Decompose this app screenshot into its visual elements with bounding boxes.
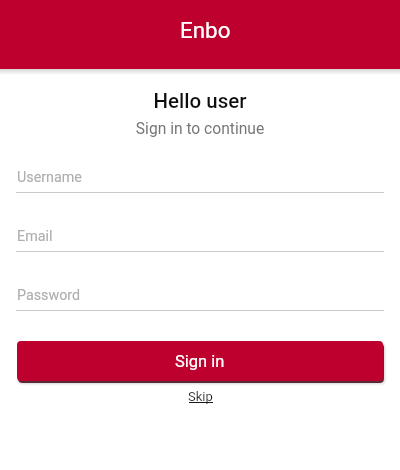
staticText: Sign in to continue — [0, 120, 400, 138]
staticText: Hello user — [0, 89, 400, 113]
button[interactable]: Skip — [182, 384, 219, 409]
staticText: Enbo — [180, 17, 231, 43]
button[interactable]: Username — [16, 160, 384, 193]
staticText: Password — [17, 287, 81, 304]
staticText: Username — [17, 169, 82, 186]
staticText: Sign in — [175, 352, 225, 371]
button[interactable]: Sign in — [17, 341, 383, 381]
button[interactable]: Email — [16, 219, 384, 252]
button[interactable]: Password — [16, 278, 384, 311]
staticText: Skip — [188, 389, 213, 404]
staticText: Email — [17, 228, 53, 245]
